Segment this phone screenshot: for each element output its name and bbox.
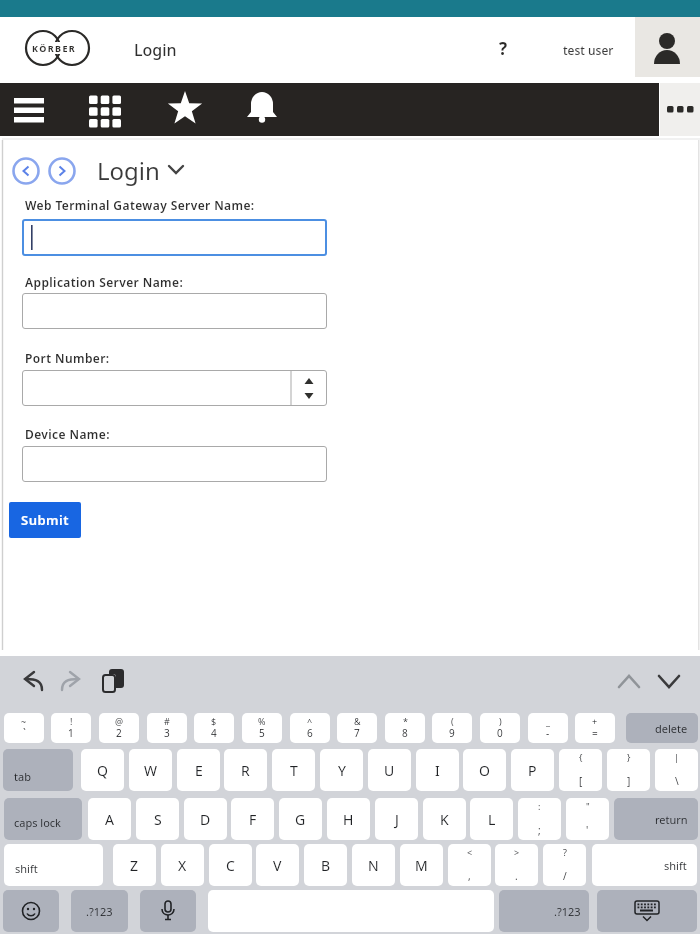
staticText: < (467, 846, 473, 858)
button[interactable]: H (327, 798, 370, 840)
button[interactable]: .?123 (71, 890, 128, 932)
button[interactable]: ! (51, 713, 91, 743)
staticText: ` (23, 726, 26, 740)
button[interactable] (22, 370, 327, 406)
button[interactable]: " (566, 798, 609, 840)
button[interactable] (8, 91, 50, 129)
button[interactable]: L (470, 798, 513, 840)
staticText: % (258, 715, 266, 727)
button[interactable]: U (368, 749, 411, 791)
button[interactable]: ) (480, 713, 520, 743)
button[interactable] (597, 890, 697, 932)
button[interactable]: ~ (4, 713, 44, 743)
button[interactable]: caps lock (4, 798, 82, 840)
staticText: .?123 (86, 904, 113, 919)
button[interactable] (12, 157, 40, 185)
staticText: 9 (449, 726, 455, 740)
button[interactable] (140, 890, 196, 932)
button[interactable] (3, 890, 59, 932)
button[interactable]: R (224, 749, 267, 791)
staticText: | (674, 751, 679, 763)
button[interactable]: + (575, 713, 615, 743)
button[interactable]: E (177, 749, 220, 791)
button[interactable]: tab (3, 749, 73, 791)
button[interactable]: * (385, 713, 425, 743)
button[interactable] (164, 90, 206, 128)
button[interactable] (660, 83, 700, 136)
button[interactable] (48, 157, 76, 185)
button[interactable]: > (495, 844, 538, 886)
button[interactable]: Submit (9, 502, 81, 538)
button[interactable]: D (184, 798, 227, 840)
button[interactable]: B (304, 844, 347, 886)
button[interactable] (22, 446, 327, 482)
button[interactable] (22, 293, 327, 329)
button[interactable]: shift (4, 844, 103, 886)
button[interactable]: Q (81, 749, 124, 791)
button[interactable]: return (614, 798, 698, 840)
staticText: ? (499, 37, 508, 60)
staticText: 4 (211, 726, 217, 740)
button[interactable]: < (448, 844, 491, 886)
staticText: - (546, 726, 550, 740)
staticText: 7 (354, 726, 360, 740)
button[interactable]: M (400, 844, 443, 886)
button[interactable]: C (209, 844, 252, 886)
button[interactable]: ( (432, 713, 472, 743)
staticText: Port Number: (25, 350, 110, 366)
button[interactable]: S (136, 798, 179, 840)
button[interactable]: K (423, 798, 466, 840)
staticText: : (538, 800, 541, 812)
staticText: _ (546, 715, 550, 727)
button[interactable]: } (607, 749, 650, 791)
button[interactable]: V (256, 844, 299, 886)
button[interactable]: O (463, 749, 506, 791)
button[interactable]: { (559, 749, 602, 791)
button[interactable]: ? (490, 33, 516, 63)
button[interactable]: % (242, 713, 282, 743)
button[interactable]: ^ (290, 713, 330, 743)
staticText: E (195, 761, 203, 780)
staticText: K (440, 810, 449, 829)
button[interactable]: I (416, 749, 459, 791)
staticText: 2 (116, 726, 122, 740)
button[interactable]: W (129, 749, 172, 791)
staticText: delete (655, 721, 688, 736)
button[interactable]: | (655, 749, 698, 791)
button[interactable]: T (272, 749, 315, 791)
staticText: 1 (68, 726, 74, 740)
staticText: & (354, 715, 361, 727)
button[interactable]: & (337, 713, 377, 743)
staticText: F (249, 810, 257, 829)
button[interactable]: shift (592, 844, 697, 886)
button[interactable]: J (375, 798, 418, 840)
staticText: Login (134, 39, 177, 61)
button[interactable]: Y (320, 749, 363, 791)
staticText: [ (579, 774, 583, 788)
button[interactable]: F (231, 798, 274, 840)
staticText: B (321, 856, 331, 875)
button[interactable]: Z (113, 844, 156, 886)
staticText: * (403, 715, 408, 727)
button[interactable]: @ (99, 713, 139, 743)
button[interactable]: A (88, 798, 131, 840)
button[interactable]: G (279, 798, 322, 840)
button[interactable]: $ (194, 713, 234, 743)
button[interactable] (243, 90, 283, 128)
staticText: + (592, 715, 598, 727)
button[interactable]: : (518, 798, 561, 840)
button[interactable] (84, 91, 126, 129)
button[interactable]: N (352, 844, 395, 886)
staticText: ^ (307, 715, 313, 727)
button[interactable] (635, 17, 700, 77)
button[interactable]: # (147, 713, 187, 743)
button[interactable]: P (511, 749, 554, 791)
staticText: T (290, 761, 298, 780)
button[interactable]: X (161, 844, 204, 886)
button[interactable] (22, 219, 327, 256)
button[interactable]: delete (626, 713, 698, 743)
button[interactable]: _ (528, 713, 568, 743)
button[interactable]: .?123 (499, 890, 589, 932)
button[interactable]: ? (543, 844, 586, 886)
